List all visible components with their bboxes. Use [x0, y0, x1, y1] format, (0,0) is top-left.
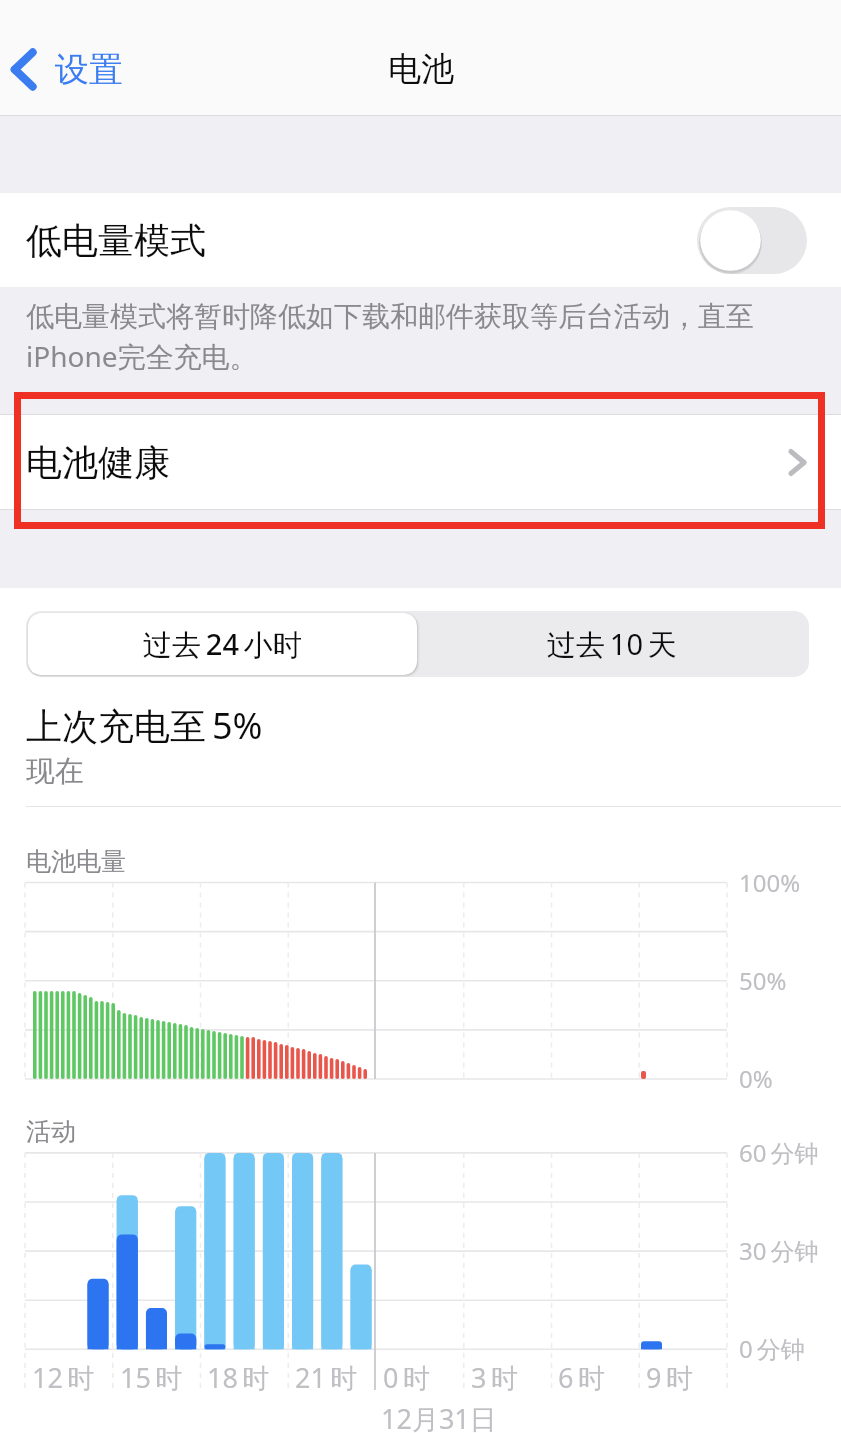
staticText: 0 时: [383, 1359, 430, 1396]
staticText: 50%: [739, 964, 787, 997]
button[interactable]: 过去 10 天: [417, 613, 807, 675]
staticText: 上次充电至 5%: [26, 701, 263, 750]
button[interactable]: 低电量模式: [0, 193, 841, 287]
button[interactable]: 电池健康: [0, 414, 841, 510]
staticText: 低电量模式将暂时降低如下载和邮件获取等后台活动，直至 iPhone完全充电。: [26, 296, 755, 376]
staticText: 9 时: [646, 1359, 693, 1396]
staticText: 18 时: [207, 1359, 270, 1396]
button[interactable]: 过去 24 小时: [28, 613, 417, 675]
staticText: 电池: [388, 48, 454, 90]
staticText: 0 分钟: [739, 1332, 805, 1365]
staticText: 100%: [739, 866, 801, 899]
staticText: 21 时: [295, 1359, 358, 1396]
staticText: 60 分钟: [739, 1136, 819, 1169]
staticText: 过去 10 天: [547, 624, 677, 664]
staticText: 12月31日: [381, 1400, 497, 1433]
staticText: 3 时: [471, 1359, 518, 1396]
staticText: 低电量模式: [26, 218, 206, 263]
staticText: 15 时: [120, 1359, 183, 1396]
staticText: 设置: [55, 48, 123, 91]
staticText: 现在: [26, 753, 84, 790]
button[interactable]: 设置: [12, 48, 123, 91]
staticText: 活动: [26, 1116, 76, 1147]
button[interactable]: 低电量模式开关: [697, 207, 807, 274]
staticText: 过去 24 小时: [143, 624, 302, 664]
staticText: 12 时: [32, 1359, 95, 1396]
staticText: 6 时: [558, 1359, 605, 1396]
staticText: 30 分钟: [739, 1234, 819, 1267]
staticText: 0%: [739, 1062, 773, 1095]
staticText: 电池健康: [26, 440, 170, 485]
staticText: 电池电量: [26, 846, 126, 877]
